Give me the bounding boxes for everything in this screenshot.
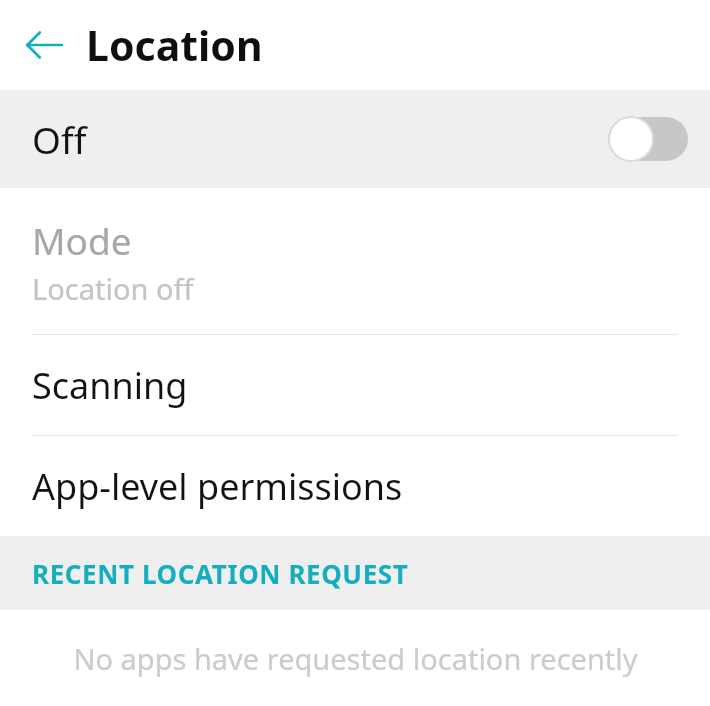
button[interactable]: Back bbox=[10, 11, 78, 79]
staticText: No apps have requested location recently bbox=[73, 639, 638, 678]
button[interactable]: App-level permissions bbox=[0, 436, 710, 536]
staticText: Off bbox=[32, 114, 87, 164]
button[interactable]: Off bbox=[0, 90, 710, 188]
staticText: Location bbox=[86, 17, 263, 73]
staticText: RECENT LOCATION REQUEST bbox=[32, 556, 409, 591]
button[interactable]: Scanning bbox=[0, 335, 710, 435]
staticText: Mode bbox=[32, 215, 132, 265]
staticText: Scanning bbox=[32, 361, 188, 410]
staticText: App-level permissions bbox=[32, 462, 403, 511]
staticText: Location off bbox=[32, 269, 194, 308]
button[interactable]: Mode bbox=[0, 188, 710, 334]
